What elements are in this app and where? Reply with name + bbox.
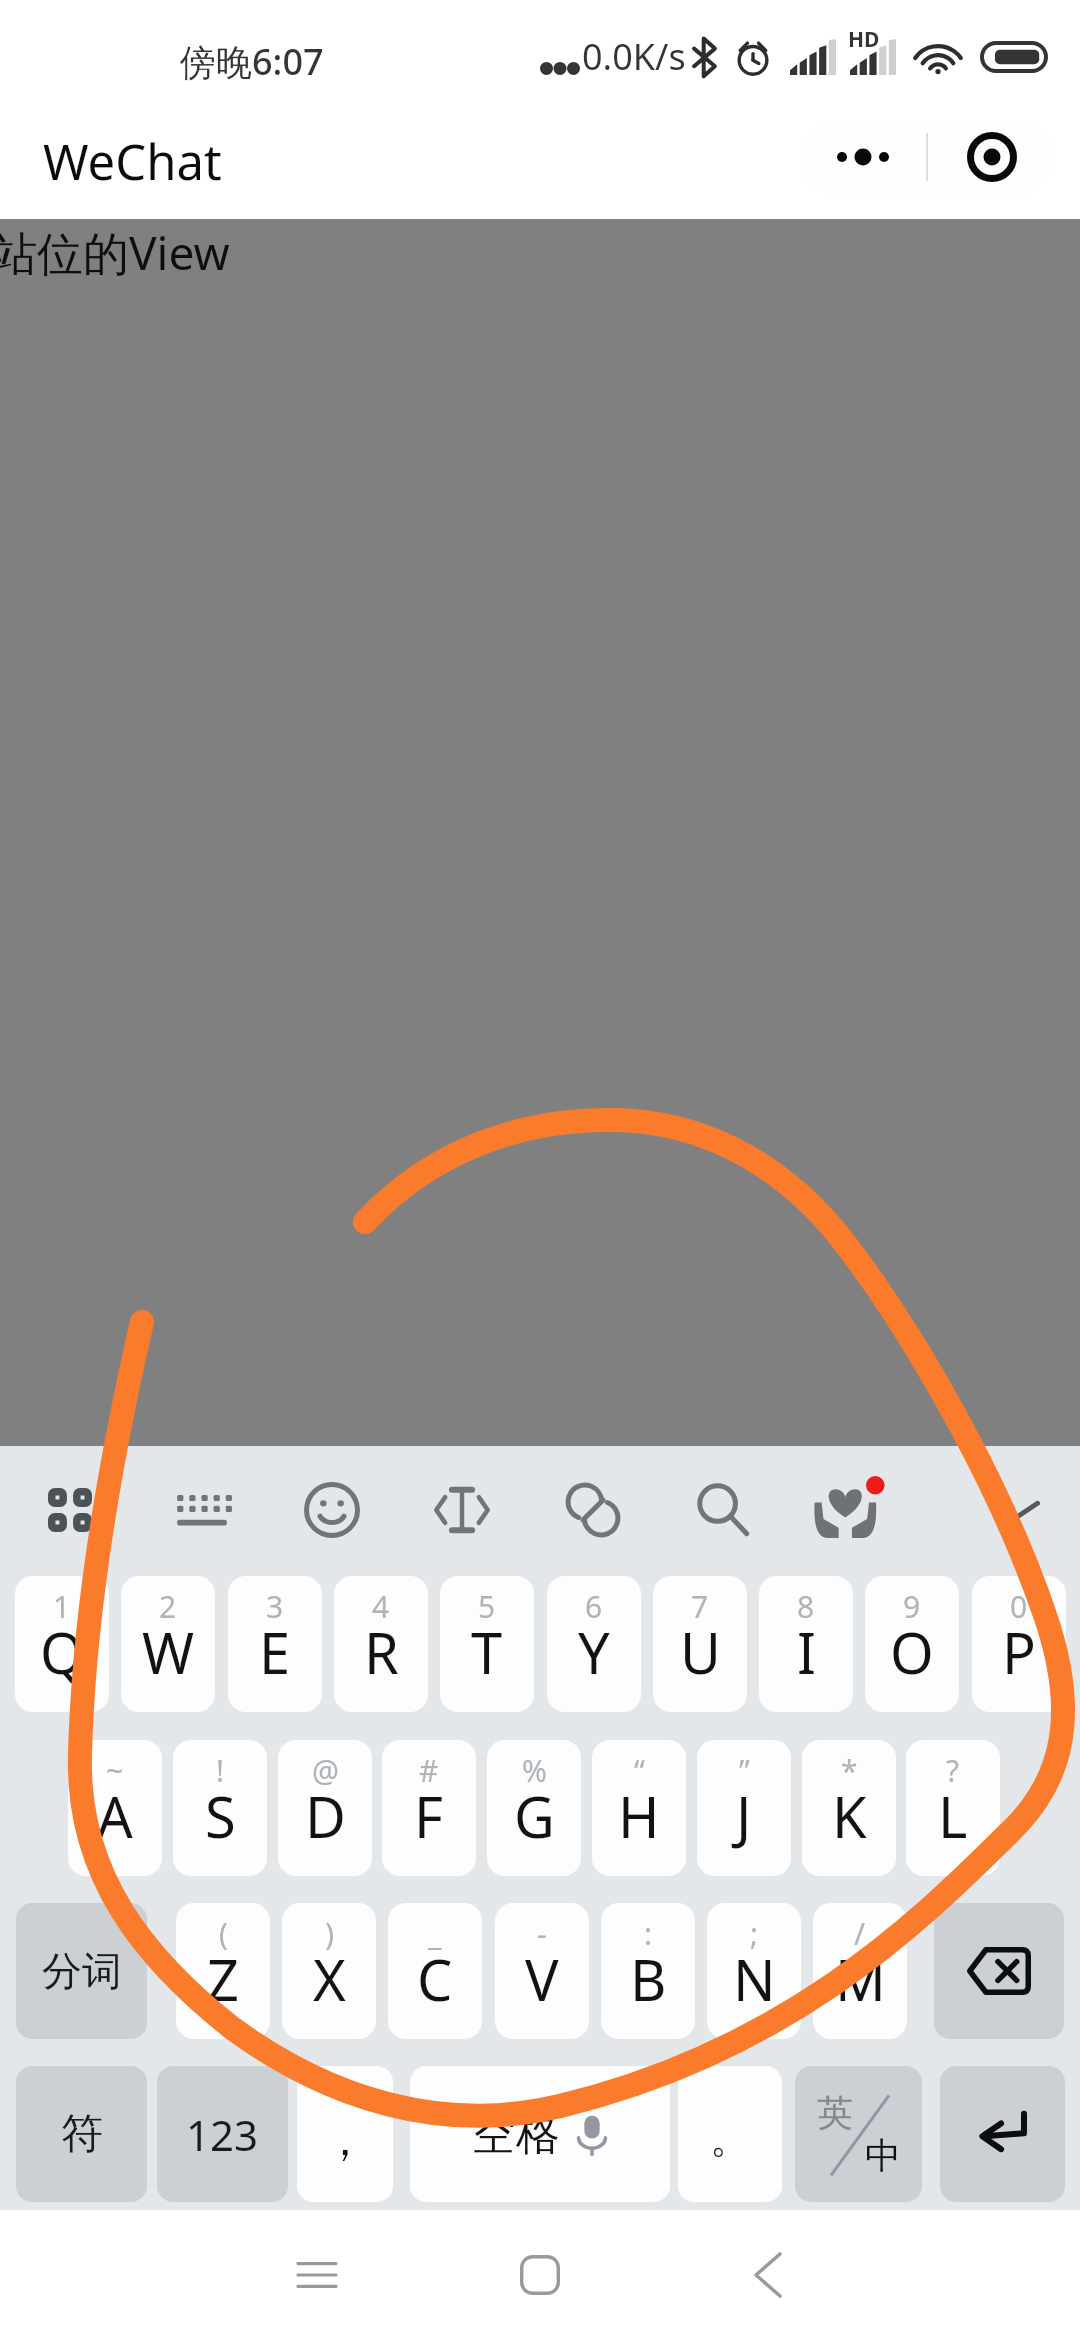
button[interactable]: ” bbox=[697, 1740, 791, 1876]
staticText: _ bbox=[428, 1913, 442, 1954]
staticText: W bbox=[142, 1614, 195, 1690]
button[interactable]: 9 bbox=[865, 1576, 959, 1712]
button[interactable]: Enter bbox=[940, 2066, 1065, 2202]
staticText: 4 bbox=[372, 1586, 390, 1627]
staticText: X bbox=[313, 1941, 346, 2017]
button[interactable]: “ bbox=[592, 1740, 686, 1876]
button[interactable]: Backspace bbox=[934, 1903, 1064, 2039]
staticText: H bbox=[618, 1778, 660, 1854]
button[interactable]: 。 bbox=[678, 2066, 782, 2202]
staticText: 7 bbox=[691, 1586, 709, 1627]
staticText: 分词 bbox=[42, 1946, 122, 1996]
staticText: ” bbox=[739, 1750, 750, 1791]
staticText: : bbox=[644, 1913, 653, 1954]
staticText: ) bbox=[325, 1913, 334, 1954]
button[interactable]: # bbox=[382, 1740, 476, 1876]
staticText: % bbox=[522, 1750, 547, 1791]
button[interactable]: Emoji bbox=[284, 1462, 380, 1558]
staticText: * bbox=[841, 1750, 858, 1791]
button[interactable]: % bbox=[487, 1740, 581, 1876]
button[interactable]: 空格 bbox=[410, 2066, 670, 2202]
button[interactable]: 2 bbox=[121, 1576, 215, 1712]
staticText: 2 bbox=[159, 1586, 177, 1627]
staticText: 站位的View bbox=[0, 221, 230, 284]
button[interactable]: Clipboard bbox=[545, 1462, 641, 1558]
staticText: K bbox=[832, 1778, 867, 1854]
button[interactable]: 分词 bbox=[16, 1903, 147, 2039]
staticText: Y bbox=[578, 1614, 610, 1690]
staticText: 符 bbox=[61, 2108, 103, 2161]
button[interactable]: 0 bbox=[972, 1576, 1066, 1712]
button[interactable]: 3 bbox=[228, 1576, 322, 1712]
staticText: 0 bbox=[1010, 1586, 1028, 1627]
button[interactable]: Recents bbox=[262, 2210, 372, 2340]
staticText: M bbox=[835, 1941, 886, 2017]
button[interactable]: @ bbox=[278, 1740, 372, 1876]
staticText: ， bbox=[323, 2113, 367, 2168]
button[interactable]: Search bbox=[675, 1462, 771, 1558]
staticText: I bbox=[797, 1614, 816, 1690]
staticText: ( bbox=[219, 1913, 228, 1954]
button[interactable]: / bbox=[813, 1903, 907, 2039]
button[interactable]: 4 bbox=[334, 1576, 428, 1712]
button[interactable]: ~ bbox=[68, 1740, 162, 1876]
staticText: WeChat bbox=[43, 128, 222, 195]
button[interactable]: ) bbox=[282, 1903, 376, 2039]
staticText: 。 bbox=[710, 2113, 750, 2163]
staticText: 英 bbox=[817, 2090, 853, 2135]
button[interactable]: 1 bbox=[15, 1576, 109, 1712]
staticText: 傍晚6:07 bbox=[180, 37, 324, 86]
staticText: 6 bbox=[585, 1586, 603, 1627]
button[interactable]: 123 bbox=[157, 2066, 288, 2202]
button[interactable]: Home bbox=[485, 2210, 595, 2340]
button[interactable]: 8 bbox=[759, 1576, 853, 1712]
button[interactable]: Hide keyboard bbox=[966, 1462, 1062, 1558]
button[interactable]: ! bbox=[173, 1740, 267, 1876]
staticText: V bbox=[525, 1941, 559, 2017]
staticText: # bbox=[419, 1750, 439, 1791]
staticText: 0.0K/s bbox=[582, 32, 686, 81]
staticText: E bbox=[259, 1614, 291, 1690]
button[interactable]: Menu and close bbox=[799, 119, 1055, 195]
button[interactable]: 6 bbox=[547, 1576, 641, 1712]
staticText: A bbox=[97, 1778, 133, 1854]
staticText: P bbox=[1002, 1614, 1036, 1690]
staticText: 空格 bbox=[472, 2107, 560, 2162]
staticText: Z bbox=[207, 1941, 240, 2017]
staticText: C bbox=[417, 1941, 453, 2017]
staticText: U bbox=[680, 1614, 721, 1690]
staticText: ? bbox=[946, 1750, 960, 1791]
button[interactable]: ( bbox=[176, 1903, 270, 2039]
button[interactable]: : bbox=[601, 1903, 695, 2039]
staticText: J bbox=[736, 1778, 752, 1854]
staticText: @ bbox=[312, 1750, 339, 1791]
staticText: D bbox=[305, 1778, 346, 1854]
staticText: Q bbox=[40, 1614, 84, 1690]
button[interactable]: * bbox=[802, 1740, 896, 1876]
staticText: L bbox=[938, 1778, 968, 1854]
button[interactable]: ， bbox=[297, 2066, 393, 2202]
staticText: F bbox=[414, 1778, 444, 1854]
button[interactable]: ? bbox=[906, 1740, 1000, 1876]
button[interactable]: Favorites bbox=[801, 1462, 897, 1558]
button[interactable]: Keyboard bbox=[154, 1462, 250, 1558]
staticText: 9 bbox=[903, 1586, 921, 1627]
button[interactable]: _ bbox=[388, 1903, 482, 2039]
button[interactable]: 5 bbox=[440, 1576, 534, 1712]
staticText: B bbox=[630, 1941, 667, 2017]
staticText: 中 bbox=[865, 2133, 901, 2178]
staticText: 123 bbox=[186, 2106, 259, 2163]
staticText: ; bbox=[750, 1913, 759, 1954]
button[interactable]: Apps bbox=[22, 1462, 118, 1558]
staticText: 8 bbox=[797, 1586, 815, 1627]
button[interactable]: Language toggle bbox=[795, 2066, 922, 2202]
staticText: ! bbox=[216, 1750, 225, 1791]
button[interactable]: Back bbox=[713, 2210, 823, 2340]
staticText: T bbox=[471, 1614, 503, 1690]
button[interactable]: 7 bbox=[653, 1576, 747, 1712]
button[interactable]: - bbox=[495, 1903, 589, 2039]
button[interactable]: Edit text bbox=[414, 1462, 510, 1558]
button[interactable]: 符 bbox=[16, 2066, 147, 2202]
staticText: O bbox=[890, 1614, 934, 1690]
button[interactable]: ; bbox=[707, 1903, 801, 2039]
